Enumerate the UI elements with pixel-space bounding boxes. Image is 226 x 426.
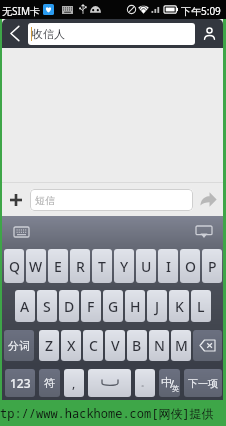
button[interactable]: T <box>92 249 112 283</box>
staticText: 下一项 <box>188 377 218 390</box>
staticText: T <box>98 257 106 276</box>
staticText: 。 <box>141 378 149 388</box>
button[interactable]: 中 <box>159 369 180 397</box>
staticText: , <box>72 375 76 391</box>
button[interactable]: W <box>26 249 46 283</box>
button[interactable]: F <box>81 290 101 322</box>
button[interactable]: Y <box>114 249 134 283</box>
button[interactable]: 分词 <box>4 330 34 361</box>
button[interactable]: Q <box>4 249 24 283</box>
staticText: / <box>170 376 175 391</box>
button[interactable]: D <box>59 290 79 322</box>
button[interactable]: N <box>149 330 169 361</box>
button[interactable]: Pick contact <box>195 19 223 48</box>
staticText: X <box>67 336 76 355</box>
button[interactable] <box>88 369 131 397</box>
button[interactable]: R <box>70 249 90 283</box>
staticText: tp://www.hackhome.com[网侠]提供 <box>0 405 214 421</box>
button[interactable]: 123 <box>5 369 35 397</box>
staticText: 短信 <box>35 194 55 207</box>
staticText: 中 <box>161 375 172 389</box>
staticText: A <box>20 297 30 316</box>
staticText: M <box>175 336 188 355</box>
staticText: O <box>185 257 196 276</box>
button[interactable]: X <box>61 330 81 361</box>
button[interactable]: U <box>136 249 156 283</box>
staticText: 英 <box>172 384 179 393</box>
button[interactable]: E <box>48 249 68 283</box>
button[interactable]: G <box>103 290 123 322</box>
button[interactable]: 符 <box>39 369 60 397</box>
staticText: 下午5:09 <box>181 4 221 18</box>
staticText: P <box>208 257 217 276</box>
staticText: V <box>111 336 120 355</box>
button[interactable]: Back <box>2 19 28 48</box>
staticText: R <box>76 257 85 276</box>
staticText: D <box>64 297 75 316</box>
button[interactable]: M <box>171 330 191 361</box>
button[interactable]: Backspace <box>193 330 222 361</box>
button[interactable]: A <box>15 290 35 322</box>
button[interactable]: C <box>83 330 103 361</box>
staticText: N <box>154 336 165 355</box>
button[interactable]: 下一项 <box>184 369 222 397</box>
staticText: W <box>29 257 43 276</box>
button[interactable]: P <box>202 249 222 283</box>
button[interactable]: O <box>180 249 200 283</box>
button[interactable]: Send <box>193 183 223 216</box>
button[interactable]: 短信 <box>30 189 193 211</box>
staticText: H <box>130 297 141 316</box>
staticText: L <box>197 297 205 316</box>
staticText: E <box>54 257 62 276</box>
staticText: U <box>141 257 152 276</box>
staticText: Q <box>9 257 20 276</box>
button[interactable]: I <box>158 249 178 283</box>
button[interactable]: H <box>125 290 145 322</box>
button[interactable]: , <box>64 369 84 397</box>
button[interactable]: L <box>191 290 211 322</box>
button[interactable]: B <box>127 330 147 361</box>
staticText: Y <box>120 257 129 276</box>
button[interactable]: Z <box>39 330 59 361</box>
staticText: Z <box>45 336 54 355</box>
staticText: S <box>43 297 51 316</box>
staticText: K <box>175 297 184 316</box>
staticText: J <box>155 297 160 316</box>
staticText: B <box>132 336 142 355</box>
button[interactable]: Hide keyboard <box>193 222 215 241</box>
staticText: 分词 <box>8 339 30 353</box>
button[interactable]: 收信人 <box>28 23 195 45</box>
staticText: 无SIM卡 <box>2 4 40 18</box>
button[interactable]: 。 <box>135 369 155 397</box>
staticText: F <box>87 297 95 316</box>
button[interactable]: Add attachment <box>2 183 30 216</box>
staticText: G <box>108 297 119 316</box>
button[interactable]: J <box>147 290 167 322</box>
staticText: C <box>89 336 98 355</box>
staticText: I <box>166 257 171 276</box>
button[interactable]: S <box>37 290 57 322</box>
button[interactable]: Switch keyboard <box>10 223 33 241</box>
staticText: 收信人 <box>32 27 65 41</box>
button[interactable]: K <box>169 290 189 322</box>
staticText: 符 <box>44 376 55 390</box>
button[interactable]: V <box>105 330 125 361</box>
staticText: 123 <box>10 375 31 391</box>
